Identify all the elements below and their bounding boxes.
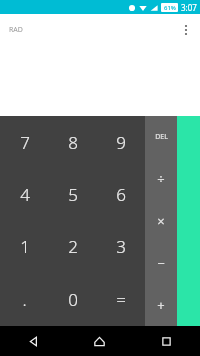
staticText: 0 (68, 288, 78, 311)
staticText: 3:07 (181, 2, 197, 13)
staticText: . (22, 288, 27, 311)
staticText: + (157, 296, 165, 314)
staticText: = (116, 288, 126, 311)
staticText: 1 (20, 235, 30, 258)
staticText: ÷ (157, 170, 165, 188)
staticText: 6 (116, 183, 126, 206)
button[interactable]: Back (0, 326, 66, 356)
button[interactable]: 7 (0, 116, 49, 168)
staticText: 5 (68, 183, 78, 206)
button[interactable]: 3 (97, 220, 145, 273)
button[interactable]: 4 (0, 168, 49, 220)
staticText: 9 (116, 131, 126, 154)
button[interactable]: Recents (133, 326, 200, 356)
staticText: RAD (9, 25, 23, 35)
staticText: 4 (20, 183, 30, 206)
button[interactable]: 8 (49, 116, 97, 168)
button[interactable]: Delete (145, 116, 177, 158)
button[interactable]: Add (145, 284, 177, 326)
button[interactable]: . (0, 273, 49, 326)
button[interactable]: Home (66, 326, 133, 356)
staticText: 8 (68, 131, 78, 154)
button[interactable]: Subtract (145, 242, 177, 284)
button[interactable]: 5 (49, 168, 97, 220)
staticText: 61% (164, 4, 176, 12)
button[interactable]: Divide (145, 158, 177, 200)
button[interactable]: 1 (0, 220, 49, 273)
staticText: 7 (20, 131, 30, 154)
button[interactable]: Multiply (145, 200, 177, 242)
button[interactable]: 9 (97, 116, 145, 168)
staticText: − (157, 254, 165, 272)
staticText: DEL (155, 132, 168, 142)
button[interactable]: More options (172, 16, 200, 44)
staticText: 2 (68, 235, 78, 258)
button[interactable]: 0 (49, 273, 97, 326)
button[interactable]: 2 (49, 220, 97, 273)
staticText: 3 (116, 235, 126, 258)
staticText: × (157, 212, 165, 230)
button[interactable]: 6 (97, 168, 145, 220)
button[interactable]: = (97, 273, 145, 326)
